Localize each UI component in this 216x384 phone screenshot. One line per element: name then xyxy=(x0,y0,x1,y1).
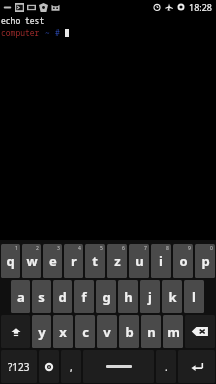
staticText: e xyxy=(49,252,57,270)
staticText: d xyxy=(58,288,67,306)
staticText: 5 xyxy=(100,245,103,252)
staticText: 4 xyxy=(78,245,81,252)
button[interactable]: n xyxy=(141,315,161,348)
button[interactable]: o xyxy=(173,244,193,278)
button[interactable]: y xyxy=(32,315,51,348)
button[interactable]: Backspace xyxy=(185,315,215,348)
staticText: v xyxy=(103,323,111,341)
staticText: f xyxy=(81,288,87,306)
staticText: q xyxy=(6,252,15,270)
button[interactable]: t xyxy=(85,244,105,278)
staticText: 9 xyxy=(188,245,191,252)
button[interactable]: l xyxy=(184,280,204,313)
staticText: 2 xyxy=(36,245,39,252)
button[interactable]: v xyxy=(97,315,117,348)
button[interactable]: Space xyxy=(83,350,154,383)
staticText: g xyxy=(102,288,111,306)
staticText: y xyxy=(38,323,46,341)
staticText: ?123 xyxy=(8,360,30,374)
staticText: 3 xyxy=(57,245,60,252)
staticText: x xyxy=(59,323,67,341)
staticText: s xyxy=(38,288,45,306)
staticText: t xyxy=(92,252,98,270)
staticText: r xyxy=(71,252,77,270)
button[interactable]: . xyxy=(156,350,176,383)
staticText: b xyxy=(125,323,134,341)
staticText: m xyxy=(167,323,180,341)
staticText: . xyxy=(165,360,168,374)
button[interactable]: e xyxy=(43,244,62,278)
button[interactable]: q xyxy=(1,244,20,278)
staticText: z xyxy=(114,252,121,270)
button[interactable]: Settings xyxy=(39,350,59,383)
button[interactable]: Shift xyxy=(1,315,30,348)
staticText: echo test xyxy=(1,15,45,26)
button[interactable]: ?123 xyxy=(1,350,37,383)
staticText: l xyxy=(192,288,196,306)
staticText: p xyxy=(201,252,210,270)
button[interactable]: g xyxy=(96,280,116,313)
staticText: computer xyxy=(1,27,45,38)
staticText: # xyxy=(55,27,65,38)
staticText: 1 xyxy=(15,245,18,252)
button[interactable]: j xyxy=(140,280,160,313)
staticText: 18:28 xyxy=(189,1,213,13)
button[interactable]: p xyxy=(195,244,215,278)
staticText: a xyxy=(17,288,25,306)
button[interactable]: k xyxy=(162,280,182,313)
staticText: 0 xyxy=(210,245,213,252)
staticText: , xyxy=(70,360,73,374)
button[interactable]: u xyxy=(129,244,149,278)
button[interactable]: d xyxy=(53,280,72,313)
staticText: u xyxy=(135,252,144,270)
button[interactable]: h xyxy=(118,280,138,313)
button[interactable]: f xyxy=(74,280,94,313)
button[interactable]: c xyxy=(75,315,95,348)
button[interactable]: a xyxy=(11,280,30,313)
staticText: i xyxy=(159,252,163,270)
staticText: 6 xyxy=(122,245,125,252)
button[interactable]: x xyxy=(53,315,73,348)
staticText: ~ xyxy=(45,27,55,38)
button[interactable]: , xyxy=(61,350,81,383)
staticText: 7 xyxy=(144,245,147,252)
button[interactable]: z xyxy=(107,244,127,278)
staticText: w xyxy=(26,252,38,270)
button[interactable]: r xyxy=(64,244,83,278)
staticText: n xyxy=(147,323,156,341)
button[interactable]: b xyxy=(119,315,139,348)
button[interactable]: m xyxy=(163,315,183,348)
staticText: k xyxy=(168,288,177,306)
staticText: o xyxy=(179,252,188,270)
staticText: c xyxy=(82,323,89,341)
staticText: h xyxy=(124,288,133,306)
button[interactable]: i xyxy=(151,244,171,278)
staticText: 8 xyxy=(166,245,169,252)
button[interactable]: w xyxy=(22,244,41,278)
button[interactable]: s xyxy=(32,280,51,313)
staticText: j xyxy=(148,288,152,306)
button[interactable]: Enter xyxy=(178,350,215,383)
button[interactable]: echo test xyxy=(0,14,216,240)
